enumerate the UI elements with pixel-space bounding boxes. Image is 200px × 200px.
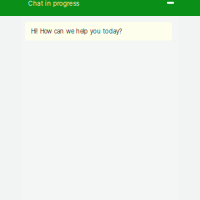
staticText: Chat in progress [28, 0, 79, 7]
staticText: Hi! How can we help you today? [31, 28, 122, 35]
button[interactable]: Minimize chat [158, 0, 182, 16]
